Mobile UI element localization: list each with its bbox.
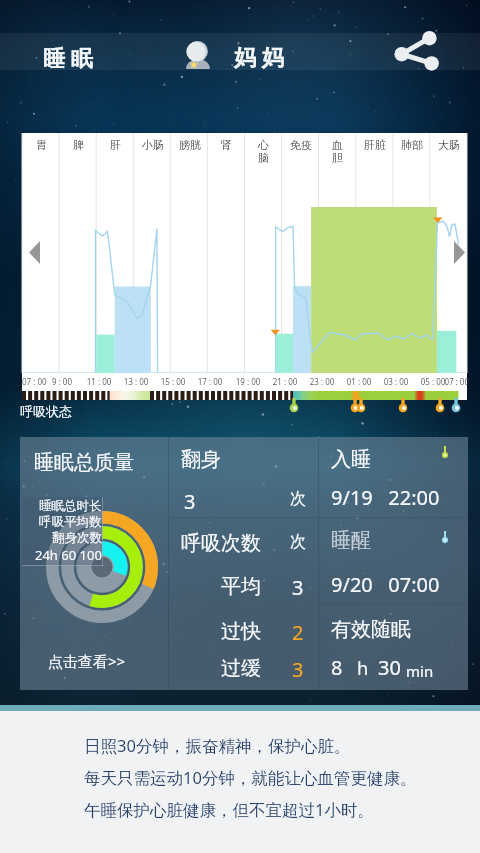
- staticText: 肝: [110, 138, 121, 152]
- staticText: 次: [290, 489, 306, 509]
- button[interactable]: 翻身: [169, 437, 318, 517]
- button[interactable]: 小肠: [134, 133, 171, 173]
- button[interactable]: Share: [386, 26, 446, 76]
- staticText: 点击查看>>: [48, 651, 126, 671]
- staticText: 3: [184, 488, 196, 515]
- staticText: 03 : 00: [380, 376, 412, 387]
- button[interactable]: 肝脏: [356, 133, 393, 173]
- staticText: 睡眠总质量: [34, 450, 134, 475]
- button[interactable]: 膀胱: [171, 133, 208, 173]
- staticText: 小肠: [142, 138, 164, 152]
- button[interactable]: 妈 妈: [180, 34, 294, 78]
- button[interactable]: 入睡: [319, 437, 468, 517]
- staticText: 3: [292, 656, 304, 683]
- staticText: 30: [378, 654, 401, 681]
- button[interactable]: 肾: [208, 133, 245, 173]
- staticText: 呼吸状态: [20, 403, 72, 419]
- staticText: 肺部: [401, 138, 423, 152]
- staticText: 心 脑: [258, 138, 269, 165]
- staticText: 入睡: [331, 447, 371, 472]
- staticText: 脾: [73, 138, 84, 152]
- button[interactable]: Next day: [443, 231, 475, 273]
- staticText: min: [406, 661, 434, 681]
- button[interactable]: 脾: [60, 133, 97, 173]
- button[interactable]: 呼吸次数: [169, 518, 318, 690]
- staticText: 日照30分钟，振奋精神，保护心脏。: [84, 734, 351, 757]
- staticText: 大肠: [438, 138, 460, 152]
- staticText: 过快: [221, 619, 261, 644]
- staticText: 睡眠总时长: [39, 498, 102, 514]
- staticText: 9 : 00: [46, 376, 78, 387]
- staticText: 免疫: [290, 138, 312, 152]
- button[interactable]: 心 脑: [245, 133, 282, 173]
- staticText: 9/19 22:00: [331, 484, 440, 511]
- staticText: 胃: [36, 138, 47, 152]
- staticText: 17 : 00: [194, 376, 226, 387]
- staticText: 睡醒: [331, 528, 371, 553]
- staticText: 01 : 00: [343, 376, 375, 387]
- staticText: 每天只需运动10分钟，就能让心血管更健康。: [84, 766, 417, 789]
- staticText: 19 : 00: [232, 376, 264, 387]
- button[interactable]: 点击查看>>: [28, 645, 148, 677]
- staticText: 15 : 00: [157, 376, 189, 387]
- staticText: 13 : 00: [120, 376, 152, 387]
- staticText: h: [357, 656, 369, 681]
- button[interactable]: 肝: [97, 133, 134, 173]
- button[interactable]: 肺部: [393, 133, 430, 173]
- button[interactable]: 血 胆: [319, 133, 356, 173]
- button[interactable]: 胃: [22, 133, 60, 173]
- staticText: 膀胱: [179, 138, 201, 152]
- staticText: 翻身次数: [52, 530, 102, 546]
- staticText: 呼吸次数: [181, 531, 261, 556]
- staticText: 午睡保护心脏健康，但不宜超过1小时。: [84, 798, 374, 821]
- staticText: 过缓: [221, 656, 261, 681]
- staticText: 07 : 00: [22, 376, 54, 387]
- staticText: 呼吸平均数: [39, 514, 102, 530]
- staticText: 睡 眠: [43, 42, 93, 72]
- staticText: 肾: [221, 138, 232, 152]
- staticText: 07 : 00: [437, 376, 469, 387]
- staticText: 妈 妈: [234, 41, 284, 71]
- button[interactable]: 免疫: [282, 133, 319, 173]
- staticText: 8: [331, 654, 343, 681]
- staticText: 11 : 00: [83, 376, 115, 387]
- staticText: 23 : 00: [306, 376, 338, 387]
- staticText: 3: [292, 574, 304, 601]
- staticText: 24h 60 100: [35, 546, 102, 564]
- button[interactable]: 睡醒: [319, 518, 468, 604]
- staticText: 肝脏: [364, 138, 386, 152]
- button[interactable]: 有效随眠: [319, 605, 468, 690]
- staticText: 次: [290, 532, 306, 552]
- staticText: 21 : 00: [269, 376, 301, 387]
- staticText: 05 : 00: [417, 376, 449, 387]
- button[interactable]: 大肠: [430, 133, 467, 173]
- button[interactable]: Previous day: [18, 231, 50, 273]
- staticText: 翻身: [181, 447, 221, 472]
- staticText: 2: [292, 619, 304, 646]
- staticText: 血 胆: [332, 138, 343, 165]
- staticText: 9/20 07:00: [331, 571, 440, 598]
- staticText: 有效随眠: [331, 617, 411, 642]
- staticText: 平均: [221, 574, 261, 599]
